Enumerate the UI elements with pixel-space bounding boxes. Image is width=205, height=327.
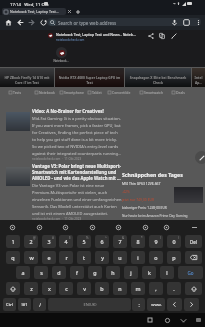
button[interactable]: Tabs xyxy=(180,15,193,30)
button[interactable]: / xyxy=(33,298,46,311)
button[interactable]: c xyxy=(59,282,73,295)
staticText: Smartwatch xyxy=(144,90,164,95)
button[interactable]: Backspace xyxy=(185,251,202,264)
button[interactable]: EN(UK) xyxy=(48,298,131,311)
button[interactable]: , xyxy=(149,282,163,295)
button[interactable]: Back xyxy=(14,15,27,30)
button[interactable]: Home xyxy=(160,314,174,326)
button[interactable]: r xyxy=(59,251,73,264)
button[interactable]: t xyxy=(77,251,91,264)
button[interactable]: Settings xyxy=(4,221,20,234)
button[interactable]: Deals xyxy=(172,89,185,96)
button[interactable]: Smartwatch xyxy=(140,89,164,96)
button[interactable]: Smartphone xyxy=(60,89,84,96)
button[interactable]: Notebook xyxy=(35,89,55,96)
button[interactable]: New tab xyxy=(74,8,81,15)
button[interactable]: Schnäppchen des Tages xyxy=(122,171,204,218)
button[interactable]: Share xyxy=(145,30,156,41)
button[interactable]: Search or type web address xyxy=(47,18,201,26)
button[interactable]: Recents xyxy=(143,314,157,326)
button[interactable]: Shift xyxy=(185,282,202,295)
button[interactable]: j xyxy=(124,266,138,279)
button[interactable]: !#1 xyxy=(18,298,31,311)
button[interactable]: Vantage V3: Polar bringt neue Multisport… xyxy=(0,163,205,221)
button[interactable]: Previous field xyxy=(167,298,182,311)
staticText: 7 xyxy=(118,238,122,245)
button[interactable]: Ctrl xyxy=(3,298,16,311)
button[interactable]: Go xyxy=(178,266,203,279)
button[interactable]: Edit xyxy=(168,30,179,41)
button[interactable]: Hide keyboard xyxy=(192,314,205,326)
button[interactable]: Notebook Test, Laptop Test… xyxy=(2,8,66,15)
button[interactable]: 2 xyxy=(24,235,38,248)
button[interactable]: l xyxy=(160,266,174,279)
button[interactable]: . xyxy=(167,282,181,295)
button[interactable]: Tablet xyxy=(88,89,102,96)
button[interactable]: 5 xyxy=(77,235,91,248)
button[interactable]: Edit xyxy=(195,151,205,164)
button[interactable]: Copy link xyxy=(156,30,167,41)
button[interactable]: m xyxy=(131,282,145,295)
staticText: 4 xyxy=(64,238,68,245)
button[interactable]: n xyxy=(113,282,127,295)
staticText: b xyxy=(100,285,104,292)
button[interactable]: z xyxy=(24,282,38,295)
staticText: f xyxy=(76,269,78,276)
button[interactable]: Next field xyxy=(184,298,199,311)
button[interactable]: g xyxy=(88,266,102,279)
button[interactable]: 3 xyxy=(42,235,56,248)
button[interactable]: p xyxy=(167,251,181,264)
staticText: a xyxy=(21,269,25,276)
button[interactable]: Home xyxy=(2,15,15,30)
button[interactable]: e xyxy=(42,251,56,264)
button[interactable]: HP ZBook Firefly 14 G10 mit Core i7 im T… xyxy=(0,68,54,87)
button[interactable]: GIF xyxy=(84,221,100,234)
button[interactable]: s xyxy=(34,266,48,279)
button[interactable]: Snapdragon X Elite bei Benchmark Check xyxy=(125,68,191,87)
button[interactable]: Forward xyxy=(25,15,38,30)
button[interactable]: More xyxy=(186,221,202,234)
button[interactable]: Tests xyxy=(9,89,22,96)
button[interactable]: b xyxy=(95,282,109,295)
button[interactable]: Convertible xyxy=(108,89,131,96)
button[interactable]: i xyxy=(131,251,145,264)
button[interactable]: Back xyxy=(176,314,190,326)
staticText: Intel Apollo xyxy=(194,75,203,85)
button[interactable]: www. xyxy=(147,298,165,311)
button[interactable]: w xyxy=(24,251,38,264)
button[interactable]: Clipboard xyxy=(31,221,47,234)
button[interactable]: Sticker xyxy=(57,221,73,234)
button[interactable]: q xyxy=(6,251,20,264)
button[interactable]: : xyxy=(132,298,145,311)
button[interactable]: u xyxy=(113,251,127,264)
button[interactable]: Theme xyxy=(110,221,126,234)
button[interactable]: h xyxy=(106,266,120,279)
button[interactable]: o xyxy=(149,251,163,264)
button[interactable]: 7 xyxy=(113,235,127,248)
button[interactable]: Emoji xyxy=(158,221,174,234)
button[interactable]: 0 xyxy=(167,235,181,248)
button[interactable]: 6 xyxy=(95,235,109,248)
button[interactable]: a xyxy=(16,266,30,279)
button[interactable]: 1 xyxy=(6,235,20,248)
button[interactable]: Intel Apollo xyxy=(192,68,205,87)
button[interactable]: Reload xyxy=(37,15,50,30)
button[interactable]: k xyxy=(142,266,156,279)
button[interactable]: y xyxy=(95,251,109,264)
button[interactable]: Video: A No-Brainer for Creatives! xyxy=(0,108,205,161)
button[interactable]: Del xyxy=(185,235,202,248)
button[interactable]: 8 xyxy=(131,235,145,248)
button[interactable]: v xyxy=(77,282,91,295)
button[interactable]: Notebook… xyxy=(50,47,72,63)
button[interactable]: Nvidia RTX 4080 Super Laptop GPU im Test xyxy=(55,68,124,87)
button[interactable]: Voice search xyxy=(168,15,181,30)
button[interactable]: More options xyxy=(192,15,205,30)
button[interactable]: 4 xyxy=(59,235,73,248)
button[interactable]: Voice input xyxy=(137,221,153,234)
button[interactable]: Shift xyxy=(6,282,20,295)
button[interactable]: d xyxy=(52,266,66,279)
button[interactable]: 9 xyxy=(149,235,163,248)
button[interactable]: Close tab xyxy=(66,8,73,15)
button[interactable]: f xyxy=(70,266,84,279)
button[interactable]: x xyxy=(42,282,56,295)
